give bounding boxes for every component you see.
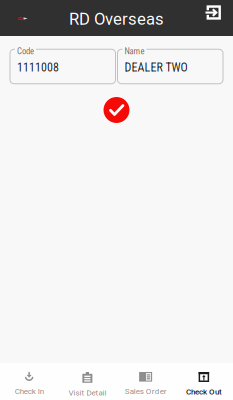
staticText: Visit Detail	[68, 388, 106, 397]
button[interactable]: Log out	[200, 0, 227, 26]
staticText: DEALER TWO	[124, 60, 187, 74]
staticText: Check In	[15, 387, 44, 396]
button[interactable]: Check In	[0, 363, 58, 400]
button[interactable]: Check Out	[175, 363, 233, 400]
staticText: Sales Order	[125, 387, 167, 396]
staticText: Code	[17, 46, 34, 56]
button[interactable]: Visit Detail	[58, 363, 116, 400]
staticText: 1111008	[17, 60, 59, 74]
button[interactable]: Sales Order	[116, 363, 175, 400]
staticText: Check Out	[186, 387, 222, 396]
staticText: Name	[124, 46, 144, 56]
staticText: RD Overseas	[69, 9, 164, 29]
